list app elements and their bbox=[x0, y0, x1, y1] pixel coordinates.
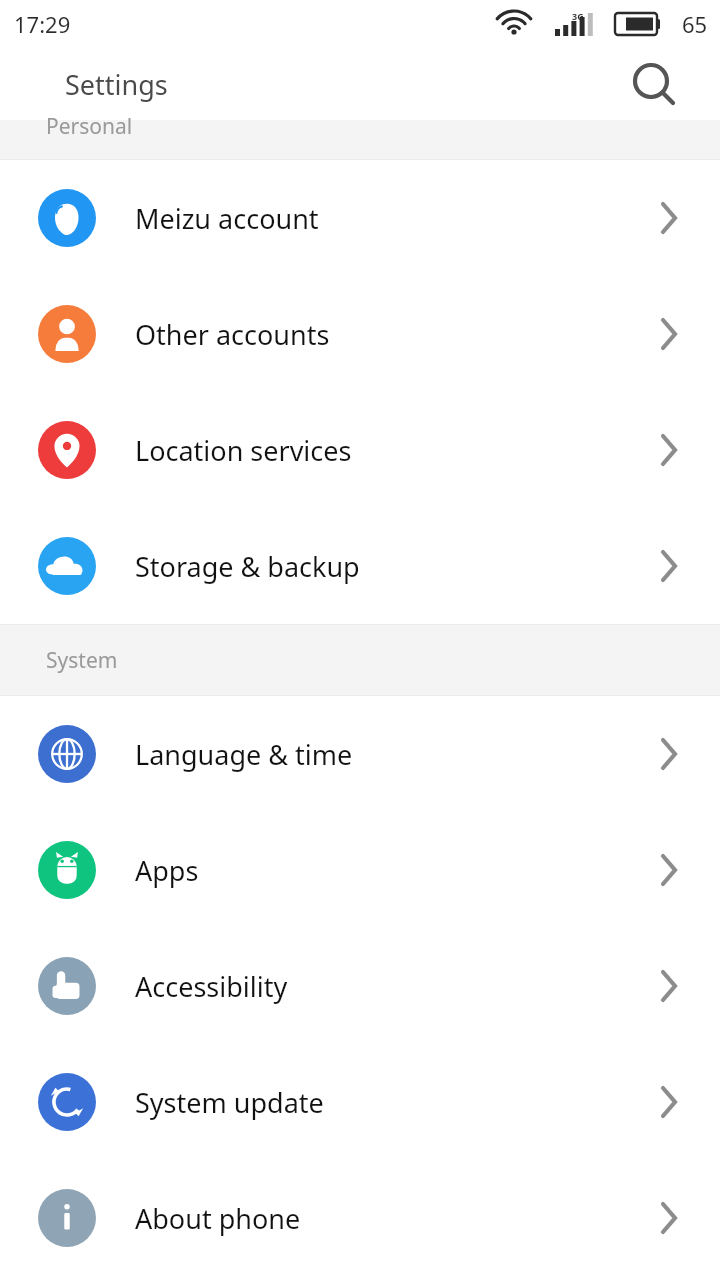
staticText: Apps bbox=[135, 852, 680, 889]
button[interactable]: Other accounts bbox=[0, 276, 720, 392]
staticText: System update bbox=[135, 1084, 680, 1121]
staticText: Language & time bbox=[135, 736, 680, 773]
staticText: Other accounts bbox=[135, 316, 680, 353]
button[interactable]: Meizu account bbox=[0, 160, 720, 276]
staticText: Personal bbox=[46, 112, 133, 141]
button[interactable]: Storage & backup bbox=[0, 508, 720, 624]
staticText: Location services bbox=[135, 432, 680, 469]
button[interactable]: Search bbox=[628, 58, 680, 110]
staticText: 3G bbox=[572, 10, 584, 22]
button[interactable]: Apps bbox=[0, 812, 720, 928]
staticText: 17:29 bbox=[14, 9, 71, 39]
staticText: About phone bbox=[135, 1200, 680, 1237]
button[interactable]: About phone bbox=[0, 1160, 720, 1276]
staticText: Settings bbox=[65, 66, 168, 103]
staticText: 65 bbox=[682, 9, 708, 39]
staticText: Meizu account bbox=[135, 200, 680, 237]
staticText: System bbox=[46, 646, 118, 675]
staticText: Storage & backup bbox=[135, 548, 680, 585]
button[interactable]: Language & time bbox=[0, 696, 720, 812]
staticText: Accessibility bbox=[135, 968, 680, 1005]
button[interactable]: Accessibility bbox=[0, 928, 720, 1044]
button[interactable]: System update bbox=[0, 1044, 720, 1160]
button[interactable]: Location services bbox=[0, 392, 720, 508]
